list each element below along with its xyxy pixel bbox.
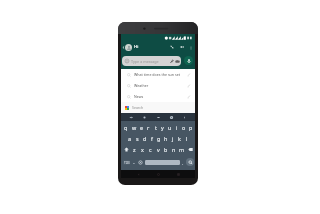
button[interactable]: GIF <box>156 115 161 120</box>
button[interactable]: Recent apps <box>175 171 181 177</box>
staticText: r <box>147 124 150 131</box>
button[interactable]: b <box>162 146 170 153</box>
button[interactable]: Search <box>186 158 194 166</box>
button[interactable]: g <box>155 135 162 142</box>
button[interactable]: Type a message <box>122 56 181 66</box>
button[interactable]: z <box>130 146 138 153</box>
button[interactable]: y <box>159 124 166 131</box>
button[interactable]: Voice call <box>169 44 175 50</box>
button[interactable]: u <box>166 124 173 131</box>
staticText: b <box>164 146 168 153</box>
button[interactable]: t <box>152 124 159 131</box>
staticText: What time does the sun set <box>134 72 181 77</box>
button[interactable]: Weather <box>121 80 195 91</box>
button[interactable]: c <box>146 146 154 153</box>
staticText: a <box>128 135 132 142</box>
button[interactable]: n <box>170 146 178 153</box>
button[interactable]: d <box>141 135 148 142</box>
staticText: i <box>176 124 178 131</box>
button[interactable]: Switch language <box>129 115 134 120</box>
staticText: s <box>136 135 139 142</box>
button[interactable]: ?123 <box>123 160 130 165</box>
button[interactable]: i <box>173 124 180 131</box>
button[interactable]: Settings <box>169 115 174 120</box>
button[interactable]: Contact photo <box>125 44 132 51</box>
button[interactable]: a <box>126 135 134 142</box>
staticText: u <box>168 124 172 131</box>
staticText: n <box>172 146 176 153</box>
staticText: News <box>134 94 144 99</box>
staticText: p <box>189 124 193 131</box>
button[interactable]: Emoji <box>142 115 147 120</box>
button[interactable]: More <box>182 115 187 120</box>
staticText: o <box>182 124 186 131</box>
button[interactable]: j <box>169 135 176 142</box>
button[interactable]: Home <box>155 171 161 177</box>
staticText: Search <box>132 105 144 110</box>
staticText: e <box>140 124 144 131</box>
button[interactable]: l <box>183 135 190 142</box>
button[interactable]: p <box>187 124 194 131</box>
button[interactable]: Record voice message <box>184 56 193 65</box>
button[interactable]: v <box>154 146 162 153</box>
staticText: j <box>172 135 174 142</box>
staticText: l <box>186 135 188 142</box>
staticText: Type a message <box>131 59 159 64</box>
staticText: . <box>182 159 184 166</box>
button[interactable]: Video call <box>179 44 185 50</box>
button[interactable]: s <box>134 135 141 142</box>
button[interactable]: News <box>121 91 195 102</box>
staticText: k <box>178 135 181 142</box>
staticText: y <box>161 124 164 131</box>
button[interactable]: q <box>122 124 130 131</box>
button[interactable]: e <box>138 124 145 131</box>
button[interactable]: k <box>176 135 183 142</box>
button[interactable]: w <box>130 124 138 131</box>
staticText: v <box>157 146 160 153</box>
button[interactable]: Back <box>135 171 141 177</box>
button[interactable]: f <box>148 135 155 142</box>
button[interactable]: What time does the sun set <box>121 69 195 80</box>
staticText: z <box>133 146 136 153</box>
staticText: m <box>179 146 185 153</box>
button[interactable]: r <box>145 124 152 131</box>
button[interactable]: Back <box>121 45 125 49</box>
button[interactable]: More options <box>188 45 193 50</box>
button[interactable]: Search <box>121 102 195 113</box>
button[interactable]: x <box>138 146 146 153</box>
staticText: q <box>124 124 128 131</box>
button[interactable]: Space <box>145 160 180 165</box>
button[interactable]: Shift <box>122 146 130 153</box>
staticText: - <box>133 159 135 166</box>
button[interactable]: o <box>180 124 187 131</box>
staticText: w <box>132 124 137 131</box>
button[interactable]: m <box>178 146 186 153</box>
staticText: d <box>143 135 147 142</box>
staticText: t <box>155 124 157 131</box>
staticText: x <box>141 146 144 153</box>
staticText: Hi <box>134 44 139 50</box>
staticText: h <box>164 135 168 142</box>
staticText: Weather <box>134 83 149 88</box>
button[interactable]: Backspace <box>186 146 194 153</box>
staticText: f <box>151 135 153 142</box>
staticText: g <box>157 135 161 142</box>
staticText: c <box>149 146 152 153</box>
button[interactable]: h <box>162 135 169 142</box>
staticText: ?123 <box>124 161 130 165</box>
